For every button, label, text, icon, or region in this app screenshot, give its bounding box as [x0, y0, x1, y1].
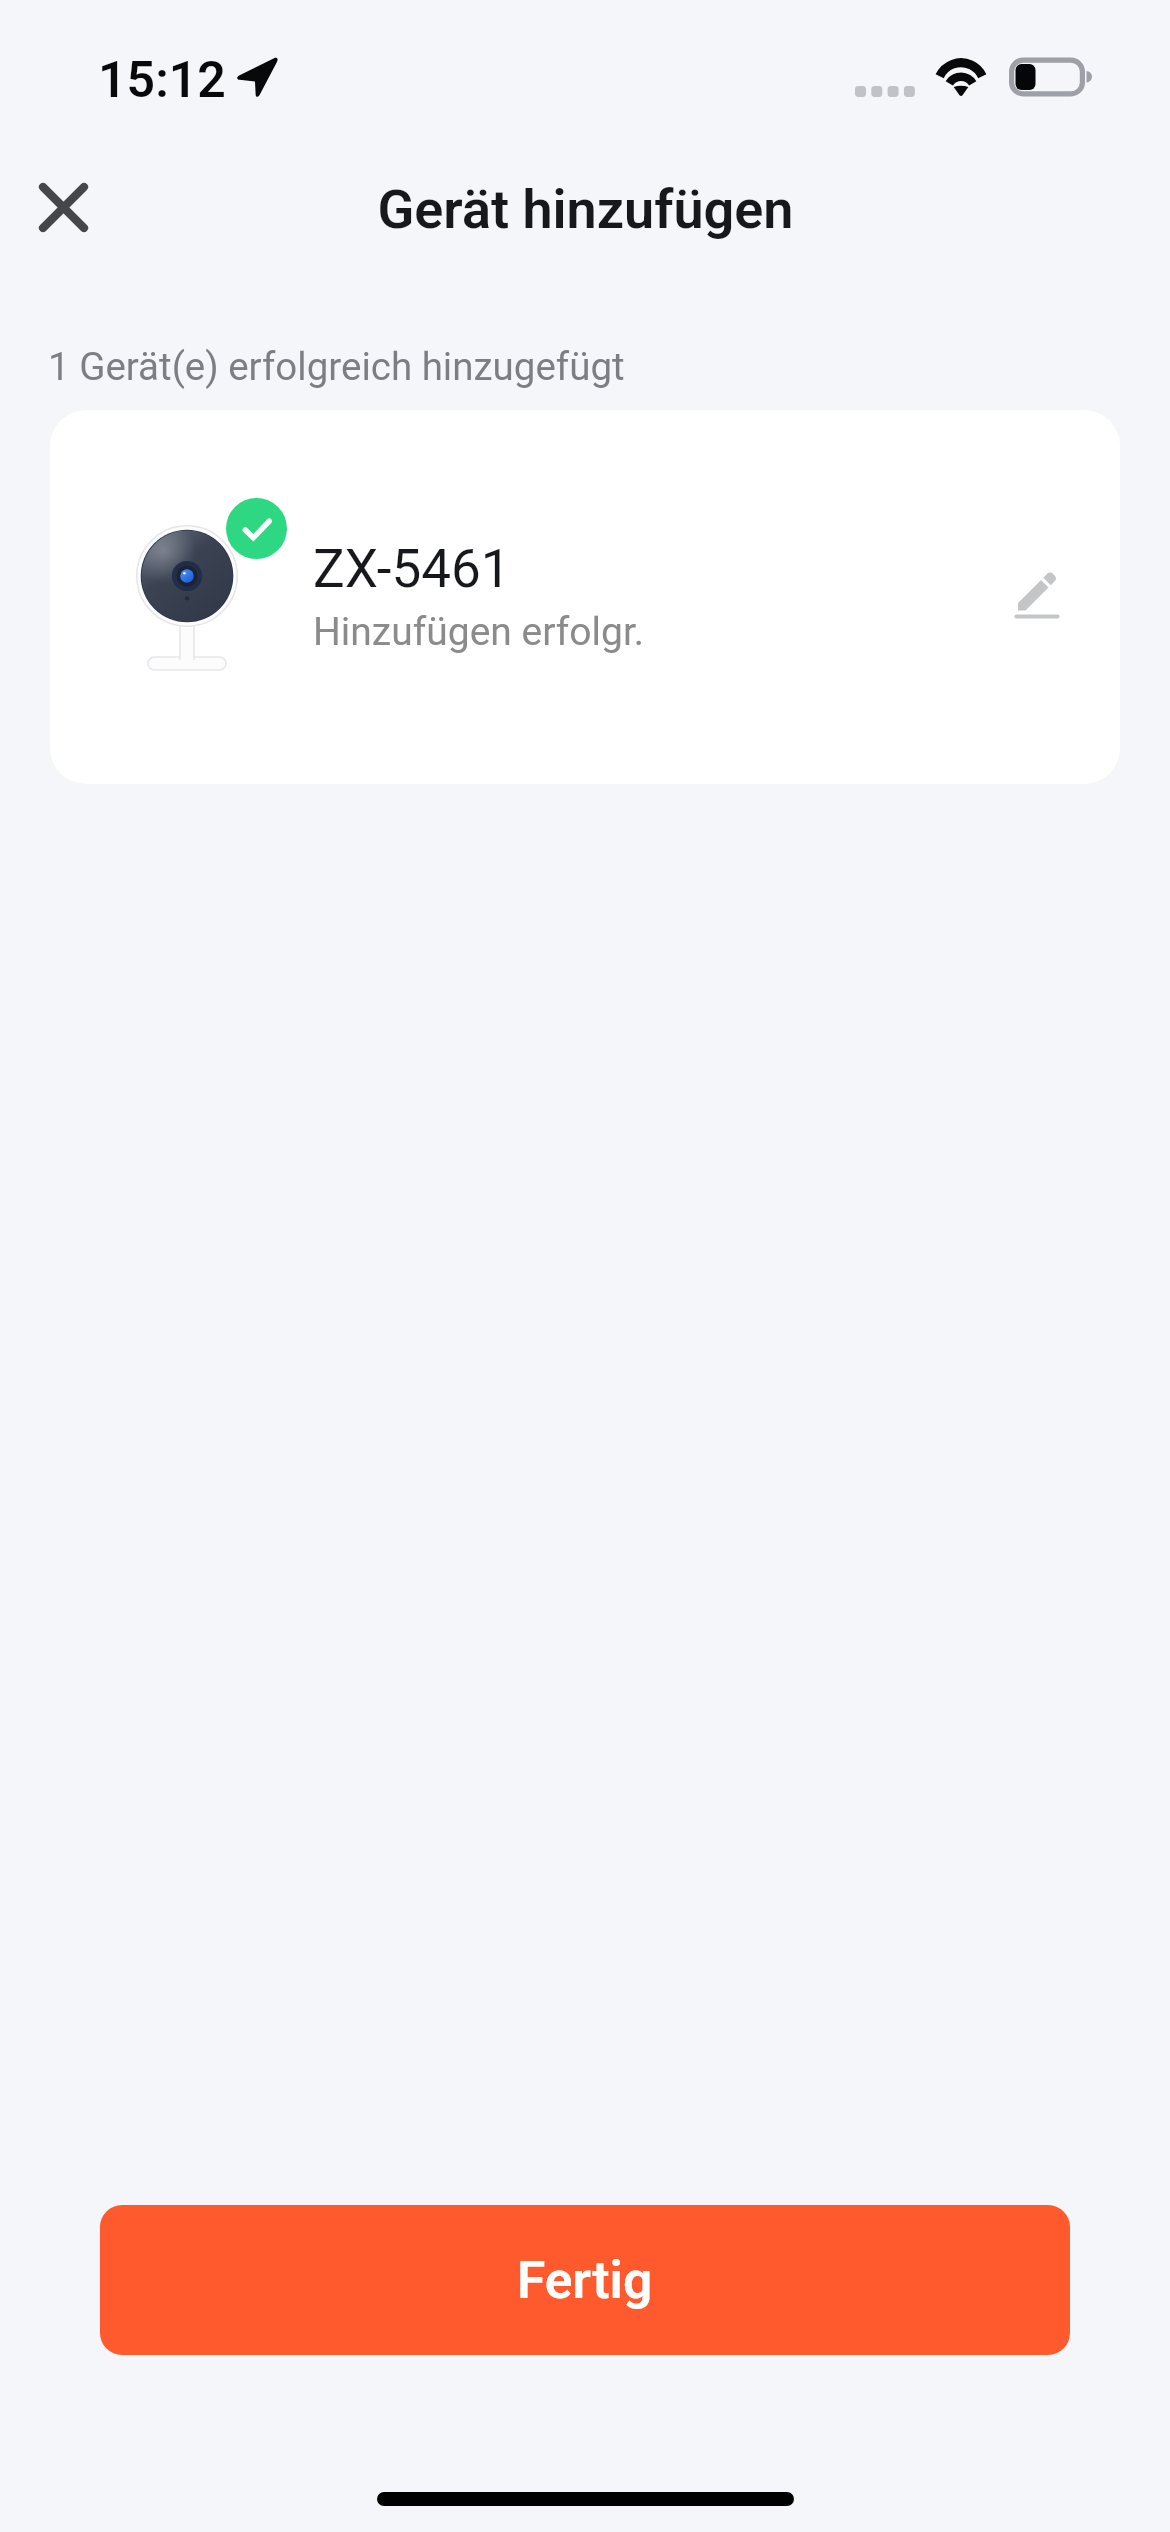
button[interactable]: Fertig	[100, 2205, 1070, 2355]
button[interactable]: Rename	[987, 542, 1087, 642]
staticText: 15:12	[98, 51, 226, 110]
staticText: Hinzufügen erfolgr.	[313, 609, 645, 655]
staticText: Gerät hinzufügen	[377, 178, 794, 241]
staticText: ZX-5461	[313, 538, 511, 600]
staticText: Fertig	[517, 2250, 653, 2310]
button[interactable]: Close	[18, 162, 108, 252]
staticText: 1 Gerät(e) erfolgreich hinzugefügt	[48, 344, 625, 389]
button[interactable]: ZX-5461	[50, 410, 1120, 784]
